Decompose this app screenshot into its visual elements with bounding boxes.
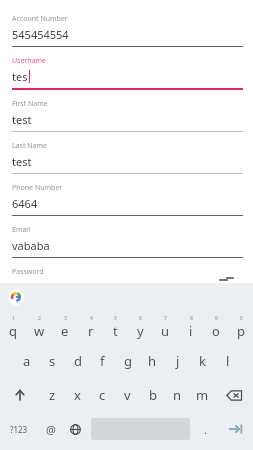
staticText: 5 xyxy=(114,315,117,322)
staticText: Phone Number xyxy=(12,183,63,193)
button[interactable]: s xyxy=(40,344,65,378)
button[interactable]: l xyxy=(215,344,240,378)
button[interactable]: Change language xyxy=(63,412,88,446)
button[interactable]: m xyxy=(190,378,215,412)
staticText: 9 xyxy=(215,315,218,322)
button[interactable]: x xyxy=(65,378,90,412)
button[interactable]: z xyxy=(39,378,65,412)
staticText: w xyxy=(34,322,45,340)
button[interactable]: j xyxy=(165,344,190,378)
button[interactable]: 2 xyxy=(26,311,52,344)
staticText: x xyxy=(74,386,81,404)
button[interactable]: c xyxy=(90,378,115,412)
staticText: o xyxy=(212,322,220,340)
staticText: 2 xyxy=(38,315,41,322)
staticText: n xyxy=(173,386,182,404)
button[interactable]: First Name xyxy=(0,99,253,132)
button[interactable]: 4 xyxy=(78,311,103,344)
staticText: @ xyxy=(46,422,56,437)
button[interactable]: Backspace xyxy=(215,378,253,412)
staticText: s xyxy=(49,352,56,370)
staticText: m xyxy=(196,386,209,404)
button[interactable]: ?123 xyxy=(0,412,38,446)
staticText: 545454554 xyxy=(12,27,69,42)
staticText: Account Number xyxy=(12,14,68,24)
button[interactable]: Last Name xyxy=(0,141,253,174)
button[interactable]: Shift xyxy=(0,378,39,412)
button[interactable]: 6 xyxy=(128,311,153,344)
staticText: 4 xyxy=(90,315,93,322)
staticText: 6 xyxy=(139,315,142,322)
staticText: 8 xyxy=(190,315,193,322)
staticText: y xyxy=(137,322,144,340)
button[interactable]: 9 xyxy=(203,311,228,344)
button[interactable]: n xyxy=(165,378,190,412)
button[interactable]: 0 xyxy=(228,311,253,344)
button[interactable]: Google xyxy=(8,289,24,305)
button[interactable]: d xyxy=(65,344,90,378)
staticText: Last Name xyxy=(12,141,48,151)
staticText: q xyxy=(9,322,17,340)
button[interactable]: b xyxy=(140,378,165,412)
staticText: f xyxy=(100,352,105,370)
button[interactable]: h xyxy=(140,344,165,378)
staticText: u xyxy=(161,322,170,340)
staticText: Password xyxy=(12,267,44,277)
button[interactable]: Username xyxy=(0,56,253,90)
button[interactable]: v xyxy=(115,378,140,412)
button[interactable]: Email xyxy=(0,225,253,258)
button[interactable]: 5 xyxy=(103,311,128,344)
staticText: . xyxy=(204,422,207,437)
staticText: 1 xyxy=(12,315,15,322)
button[interactable]: 1 xyxy=(0,311,26,344)
button[interactable]: a xyxy=(14,344,40,378)
staticText: i xyxy=(189,322,193,340)
staticText: test xyxy=(12,154,32,169)
staticText: z xyxy=(49,386,56,404)
button[interactable]: 7 xyxy=(153,311,178,344)
button[interactable]: . xyxy=(193,412,218,446)
staticText: p xyxy=(237,322,245,340)
staticText: g xyxy=(124,352,132,370)
button[interactable]: k xyxy=(190,344,215,378)
staticText: r xyxy=(88,322,94,340)
staticText: c xyxy=(99,386,106,404)
staticText: 6464 xyxy=(12,196,38,211)
button[interactable]: 8 xyxy=(178,311,203,344)
staticText: tes xyxy=(12,69,28,84)
staticText: d xyxy=(74,352,82,370)
button[interactable]: Account Number xyxy=(0,14,253,47)
staticText: 0 xyxy=(240,315,243,322)
staticText: First Name xyxy=(12,99,48,109)
staticText: v xyxy=(124,386,131,404)
staticText: j xyxy=(176,352,180,370)
staticText: t xyxy=(113,322,118,340)
staticText: test xyxy=(12,112,32,127)
button[interactable]: Next field xyxy=(218,412,253,446)
staticText: h xyxy=(148,352,157,370)
other: Toggle password visibility xyxy=(218,274,234,282)
staticText: k xyxy=(199,352,206,370)
button[interactable]: @ xyxy=(38,412,63,446)
staticText: e xyxy=(61,322,69,340)
staticText: l xyxy=(226,352,230,370)
staticText: Email xyxy=(12,225,30,235)
staticText: b xyxy=(149,386,157,404)
staticText: 7 xyxy=(164,315,167,322)
staticText: ?123 xyxy=(10,424,28,435)
staticText: 3 xyxy=(64,315,67,322)
button[interactable]: g xyxy=(115,344,140,378)
button[interactable]: Phone Number xyxy=(0,183,253,216)
staticText: vababa xyxy=(12,238,50,253)
staticText: Username xyxy=(12,56,47,66)
staticText: a xyxy=(23,352,31,370)
button[interactable]: 3 xyxy=(52,311,78,344)
button[interactable]: f xyxy=(90,344,115,378)
